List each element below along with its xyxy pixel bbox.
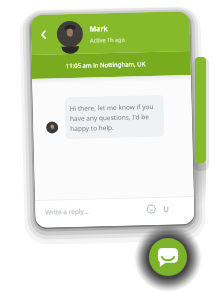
button[interactable] [162, 205, 170, 213]
button[interactable] [39, 29, 49, 40]
staticText: 11:05 am in Nottingham, UK [66, 60, 146, 70]
button[interactable] [147, 205, 155, 213]
button[interactable]: Mark [30, 11, 190, 55]
staticText: Active 1h ago [90, 36, 125, 44]
button[interactable]: Write a reply... [35, 196, 194, 228]
staticText: Mark [90, 24, 108, 34]
staticText: Write a reply... [45, 207, 89, 217]
button[interactable]: Hi there, let me know if you have any qu… [64, 95, 164, 139]
staticText: Hi there, let me know if you have any qu… [70, 102, 154, 133]
button[interactable] [149, 238, 187, 276]
